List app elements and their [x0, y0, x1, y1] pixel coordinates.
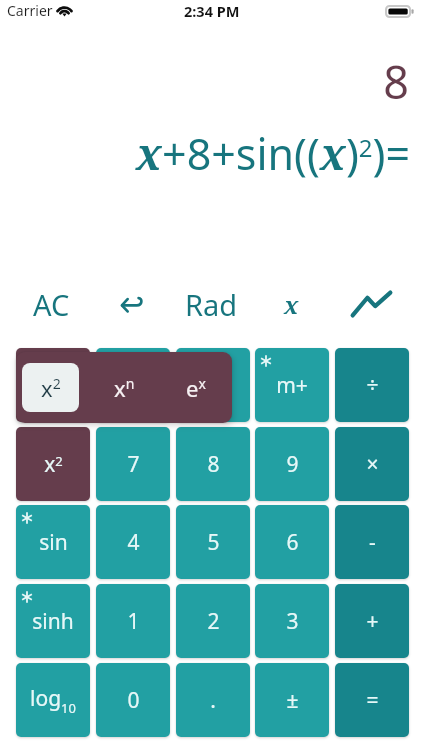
staticText: 9 — [286, 450, 299, 479]
staticText: 0 — [127, 686, 140, 715]
staticText: ± — [286, 686, 299, 715]
button[interactable]: 4 — [96, 505, 170, 579]
button[interactable]: sin — [16, 505, 90, 579]
staticText: × — [366, 450, 379, 479]
staticText: 4 — [127, 528, 140, 557]
staticText: Carrier — [7, 1, 53, 20]
staticText: 8 — [207, 450, 220, 479]
button[interactable]: × — [335, 427, 409, 501]
button[interactable]: ± — [255, 663, 329, 737]
staticText: x2 — [44, 450, 63, 479]
staticText: x+8+sin((x)2)= — [0, 124, 410, 183]
staticText: 5 — [207, 528, 220, 557]
button[interactable]: 9 — [255, 427, 329, 501]
staticText: 7 — [127, 450, 140, 479]
staticText: x — [284, 288, 299, 321]
staticText: x — [127, 371, 139, 400]
button[interactable]: Backspace — [93, 281, 171, 327]
button[interactable]: = — [335, 663, 409, 737]
staticText: log10 — [30, 684, 76, 717]
staticText: 2 — [207, 607, 220, 636]
button[interactable]: x — [96, 348, 170, 422]
button[interactable]: 0 — [96, 663, 170, 737]
button[interactable]: y — [176, 348, 250, 422]
button[interactable]: sinh — [16, 584, 90, 658]
staticText: 6 — [286, 528, 299, 557]
button[interactable]: ex — [160, 352, 232, 423]
staticText: 3 — [286, 607, 299, 636]
button[interactable]: . — [176, 663, 250, 737]
button[interactable]: Graph — [332, 281, 410, 327]
staticText: x2 — [44, 371, 63, 400]
button[interactable]: log10 — [16, 663, 90, 737]
button[interactable]: x2 — [22, 363, 79, 412]
button[interactable]: - — [335, 505, 409, 579]
staticText: ex — [186, 373, 206, 403]
staticText: AC — [33, 285, 70, 324]
staticText: ÷ — [366, 371, 379, 400]
button[interactable]: ÷ — [335, 348, 409, 422]
staticText: sinh — [32, 607, 74, 636]
staticText: . — [210, 686, 216, 715]
staticText: - — [369, 528, 376, 557]
staticText: m+ — [276, 371, 308, 400]
button[interactable]: x — [252, 281, 330, 327]
button[interactable]: AC — [12, 281, 90, 327]
button[interactable]: Rad — [172, 281, 250, 327]
button[interactable]: 7 — [96, 427, 170, 501]
button[interactable]: + — [335, 584, 409, 658]
button[interactable]: 6 — [255, 505, 329, 579]
staticText: 1 — [127, 607, 140, 636]
button[interactable]: x2 — [16, 427, 90, 501]
button[interactable]: 1 — [96, 584, 170, 658]
staticText: sin — [39, 528, 68, 557]
button[interactable]: m+ — [255, 348, 329, 422]
staticText: Rad — [185, 285, 238, 324]
button[interactable]: x2 — [16, 348, 90, 422]
staticText: 2:34 PM — [184, 1, 240, 21]
staticText: 8 — [0, 51, 409, 112]
button[interactable]: 5 — [176, 505, 250, 579]
button[interactable]: 8 — [176, 427, 250, 501]
staticText: + — [366, 607, 379, 636]
staticText: = — [366, 686, 379, 715]
staticText: xn — [114, 373, 135, 403]
button[interactable]: 2 — [176, 584, 250, 658]
staticText: x2 — [41, 373, 61, 403]
button[interactable]: 3 — [255, 584, 329, 658]
button[interactable]: xn — [88, 352, 160, 423]
